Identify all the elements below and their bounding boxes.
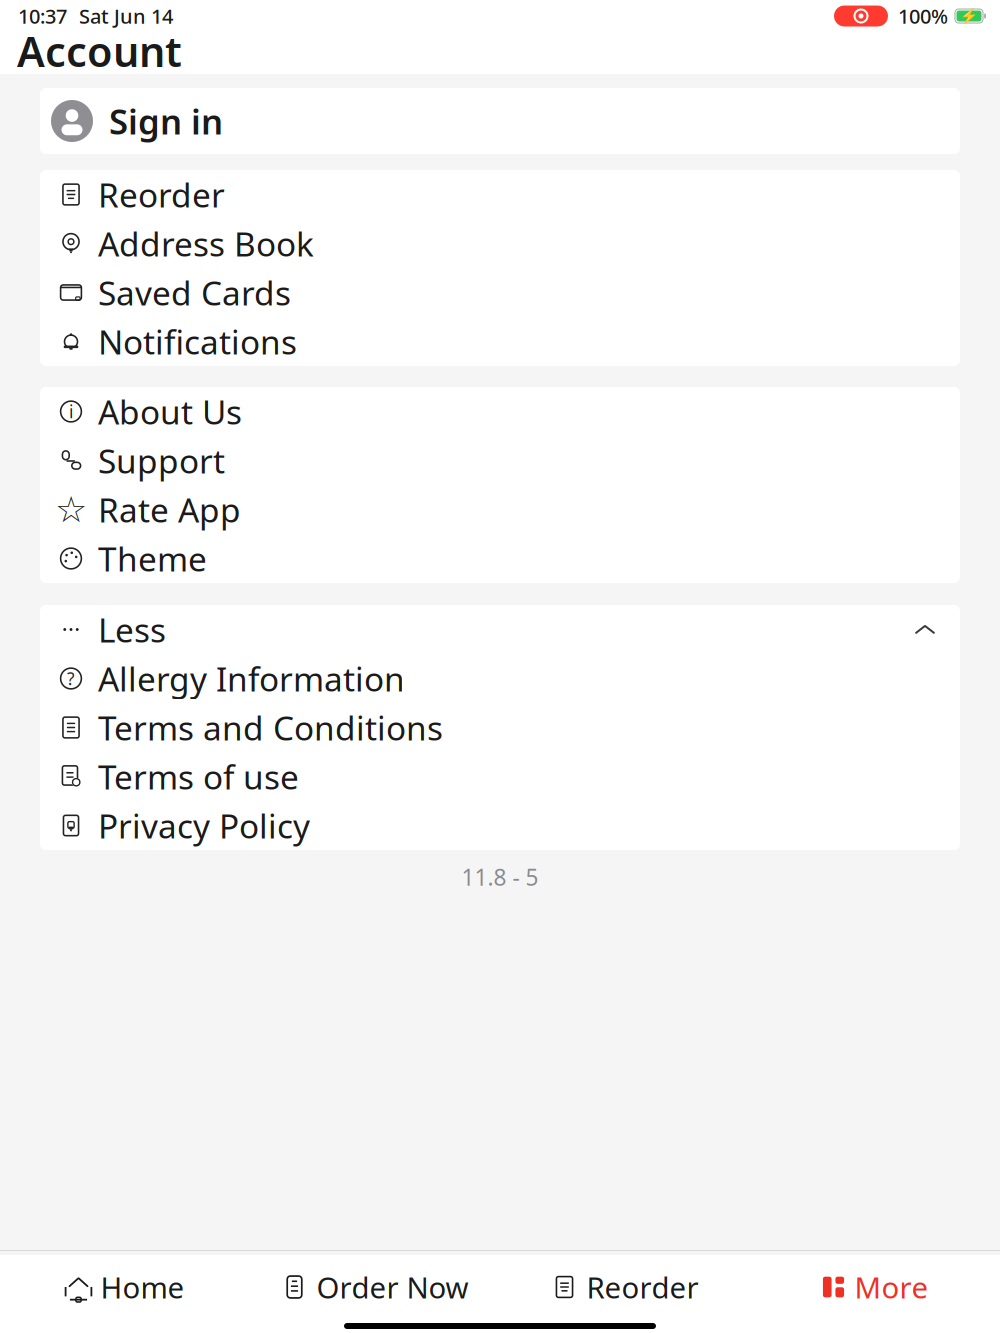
button[interactable]: ☆: [40, 485, 960, 534]
button[interactable]: Reorder: [500, 1259, 750, 1315]
staticText: Notifications: [98, 319, 297, 364]
button[interactable]: Theme: [40, 534, 960, 583]
staticText: Less: [98, 607, 166, 652]
staticText: Rate App: [98, 487, 241, 532]
button[interactable]: Notifications: [40, 317, 960, 366]
staticText: Saved Cards: [98, 270, 291, 315]
button[interactable]: Saved Cards: [40, 268, 960, 317]
button[interactable]: Reorder: [40, 170, 960, 219]
button[interactable]: Terms and Conditions: [40, 703, 960, 752]
staticText: More: [854, 1267, 928, 1306]
button[interactable]: ?: [40, 654, 960, 703]
staticText: Reorder: [98, 172, 225, 217]
staticText: Home: [100, 1267, 184, 1306]
staticText: 10:37: [18, 3, 67, 29]
staticText: ☆: [55, 489, 87, 530]
staticText: Order Now: [316, 1267, 468, 1306]
button[interactable]: Address Book: [40, 219, 960, 268]
button[interactable]: More: [750, 1259, 1000, 1315]
staticText: Sat Jun 14: [79, 3, 173, 29]
staticText: ⚡: [960, 8, 978, 24]
staticText: Terms and Conditions: [98, 705, 443, 750]
staticText: About Us: [98, 389, 242, 434]
staticText: ?: [67, 667, 75, 690]
staticText: Reorder: [586, 1267, 698, 1306]
staticText: Address Book: [98, 221, 314, 266]
button[interactable]: Order Now: [250, 1259, 500, 1315]
staticText: Sign in: [109, 98, 223, 144]
button[interactable]: Privacy Policy: [40, 801, 960, 850]
button[interactable]: Less: [40, 605, 960, 654]
staticText: i: [69, 400, 73, 423]
button[interactable]: Sign in: [40, 88, 960, 154]
button[interactable]: Terms of use: [40, 752, 960, 801]
staticText: Privacy Policy: [98, 803, 310, 848]
staticText: 11.8 - 5: [461, 862, 538, 892]
staticText: Account: [17, 24, 182, 78]
button[interactable]: i: [40, 387, 960, 436]
button[interactable]: Home: [0, 1259, 250, 1315]
staticText: Allergy Information: [98, 656, 405, 701]
staticText: Theme: [98, 536, 207, 581]
button[interactable]: Support: [40, 436, 960, 485]
staticText: 100%: [898, 3, 948, 29]
staticText: Terms of use: [98, 754, 299, 799]
staticText: Support: [98, 438, 225, 483]
